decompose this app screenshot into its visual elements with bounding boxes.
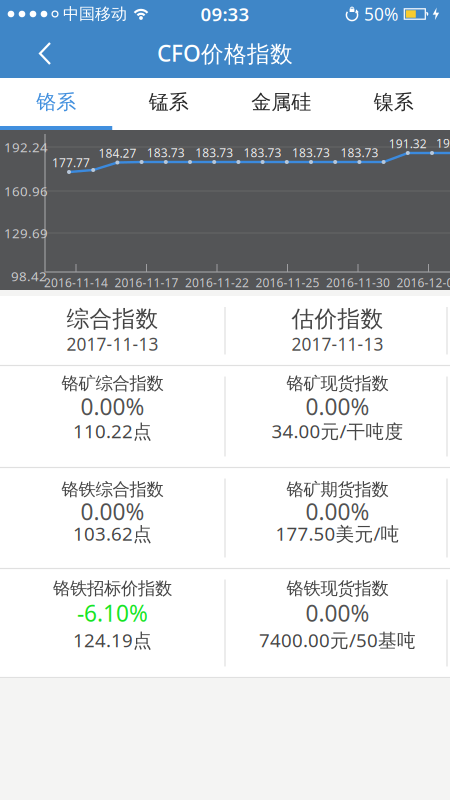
staticText: 镍系 [374,90,414,114]
staticText: 铬矿综合指数 [61,373,163,394]
staticText: 192.24 [4,138,48,156]
staticText: 7400.00元/50基吨 [259,628,416,652]
staticText: 177.77 [52,154,90,170]
staticText: 09:33 [200,2,249,26]
staticText: 183.73 [244,144,282,160]
staticText: 铬铁现货指数 [286,578,388,599]
staticText: 0.00% [305,391,369,421]
staticText: 中国移动 [63,4,127,24]
staticText: 183.73 [292,144,330,160]
staticText: 177.50美元/吨 [275,521,399,546]
staticText: 铬铁综合指数 [61,479,163,500]
staticText: 124.19点 [73,628,152,652]
staticText: 191.32 [389,135,427,151]
staticText: 0.00% [80,496,144,526]
staticText: 0.00% [305,598,369,628]
staticText: 129.69 [4,224,48,242]
staticText: -6.10% [77,598,148,628]
staticText: 103.62点 [73,521,152,546]
button[interactable]: 镍系 [337,78,450,130]
staticText: 金属硅 [251,90,311,114]
staticText: 34.00元/干吨度 [271,419,403,443]
staticText: 估价指数 [291,305,383,333]
staticText: 183.73 [147,144,185,160]
button[interactable]: 铬系 [0,78,112,130]
staticText: 0.00% [80,391,144,421]
staticText: 184.27 [98,145,136,161]
button[interactable]: 锰系 [112,78,225,130]
staticText: 2016-11-17 [114,274,178,290]
staticText: 铬矿现货指数 [286,373,388,394]
staticText: 铬铁招标价指数 [53,578,172,599]
button[interactable]: Back [0,28,90,78]
staticText: 50% [364,2,398,25]
staticText: 2016-11-22 [185,274,249,290]
staticText: 160.96 [4,182,48,200]
staticText: 0.00% [305,496,369,526]
staticText: 191.92 [436,135,450,151]
staticText: 锰系 [149,90,189,114]
staticText: 2016-11-30 [326,274,390,290]
staticText: 2016-11-25 [255,274,319,290]
staticText: 183.73 [195,144,233,160]
staticText: 2017-11-13 [66,332,158,355]
staticText: 110.22点 [73,419,152,443]
staticText: 综合指数 [66,305,158,333]
staticText: 2017-11-13 [291,332,383,355]
staticText: 183.73 [340,144,378,160]
button[interactable]: 金属硅 [225,78,337,130]
staticText: 铬矿期货指数 [286,479,388,500]
staticText: CFO价格指数 [157,38,293,68]
staticText: 2016-12-05 [396,274,450,290]
staticText: 98.42 [11,267,47,285]
staticText: 2016-11-14 [44,274,108,290]
staticText: 铬系 [36,90,76,114]
